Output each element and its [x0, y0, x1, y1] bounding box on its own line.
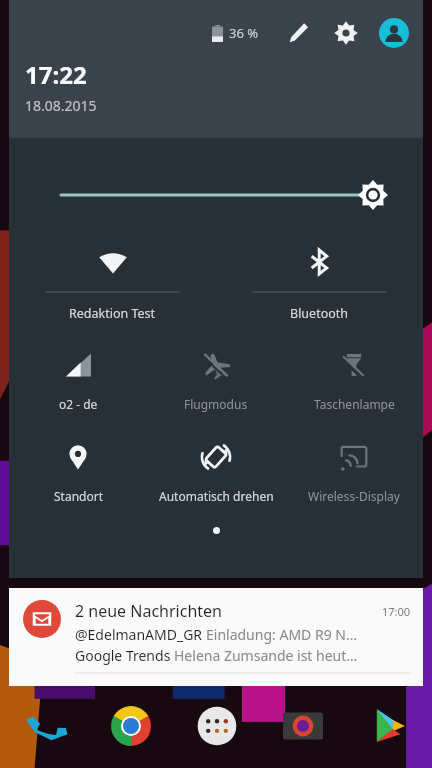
staticText: 18.08.2015: [25, 96, 97, 115]
staticText: Helena Zumsande ist heut…: [174, 646, 411, 665]
button[interactable]: Phone: [0, 696, 87, 756]
staticText: Automatisch drehen: [159, 488, 274, 504]
button[interactable]: Automatisch drehen: [147, 426, 285, 518]
staticText: Redaktion Test: [69, 305, 156, 322]
button[interactable]: Taschenlampe: [285, 334, 423, 426]
button[interactable]: Bluetooth: [216, 234, 423, 334]
button[interactable]: Wireless-Display: [285, 426, 423, 518]
button[interactable]: Flugmodus: [147, 334, 285, 426]
staticText: Taschenlampe: [314, 396, 395, 412]
staticText: @EdelmanAMD_GR: [75, 625, 206, 644]
staticText: Google Trends: [75, 646, 174, 665]
staticText: 36 %: [229, 24, 259, 42]
staticText: 17:22: [25, 58, 87, 91]
button[interactable]: Edit: [281, 16, 315, 50]
button[interactable]: Play Store: [346, 696, 432, 756]
staticText: 17:00: [382, 604, 411, 619]
staticText: Flugmodus: [184, 396, 248, 412]
button[interactable]: Standort: [9, 426, 147, 518]
button[interactable]: Redaktion Test: [9, 234, 216, 334]
button[interactable]: Settings: [329, 16, 363, 50]
staticText: Standort: [54, 488, 103, 504]
button[interactable]: Chrome: [87, 696, 174, 756]
button[interactable]: User profile: [377, 16, 411, 50]
staticText: Bluetooth: [290, 305, 349, 322]
staticText: Wireless-Display: [308, 488, 400, 504]
staticText: Einladung: AMD R9 N…: [206, 625, 411, 644]
staticText: 2 neue Nachrichten: [75, 600, 382, 622]
button[interactable]: Camera: [260, 696, 346, 756]
button[interactable]: o2 - de: [9, 334, 147, 426]
button[interactable]: 2 neue Nachrichten: [9, 588, 423, 686]
staticText: o2 - de: [59, 396, 98, 412]
button[interactable]: Apps: [174, 696, 260, 756]
button[interactable]: Brightness: [9, 178, 423, 212]
